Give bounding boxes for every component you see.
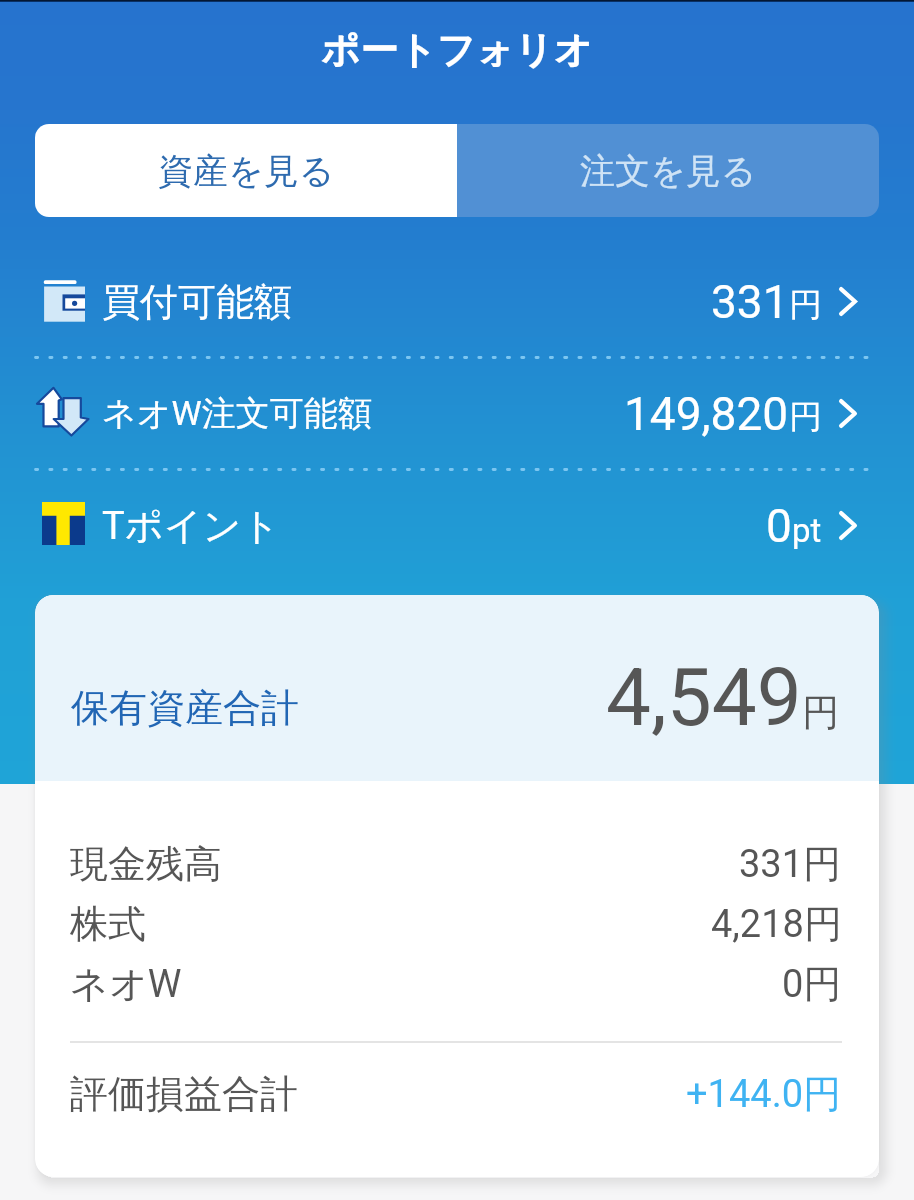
- staticText: 331円: [739, 840, 842, 888]
- staticText: 買付可能額: [102, 278, 292, 326]
- staticText: 0円: [782, 960, 842, 1008]
- staticText: ポートフォリオ: [321, 26, 593, 74]
- staticText: 円: [789, 284, 822, 326]
- staticText: 評価損益合計: [70, 1070, 298, 1118]
- button[interactable]: 資産を見る: [35, 124, 457, 217]
- button[interactable]: 買付可能額: [0, 246, 914, 357]
- staticText: Tポイント: [102, 502, 281, 550]
- staticText: ネオW注文可能額: [102, 392, 372, 435]
- staticText: +144.0円: [686, 1070, 842, 1118]
- button[interactable]: Tポイント: [0, 470, 914, 581]
- staticText: 現金残高: [70, 840, 222, 888]
- staticText: 円: [789, 396, 822, 438]
- staticText: 149,820: [624, 387, 789, 441]
- staticText: 注文を見る: [580, 149, 757, 193]
- button[interactable]: 注文を見る: [457, 124, 879, 217]
- staticText: pt: [792, 511, 822, 550]
- staticText: 資産を見る: [158, 149, 335, 193]
- staticText: 株式: [70, 900, 146, 948]
- staticText: 0: [766, 499, 792, 553]
- staticText: ネオW: [70, 960, 182, 1008]
- staticText: 331: [711, 275, 789, 329]
- staticText: 円: [802, 689, 839, 736]
- staticText: 4,218円: [711, 900, 842, 948]
- staticText: 4,549: [606, 651, 802, 745]
- button[interactable]: ネオW注文可能額: [0, 358, 914, 469]
- staticText: 保有資産合計: [71, 684, 299, 732]
